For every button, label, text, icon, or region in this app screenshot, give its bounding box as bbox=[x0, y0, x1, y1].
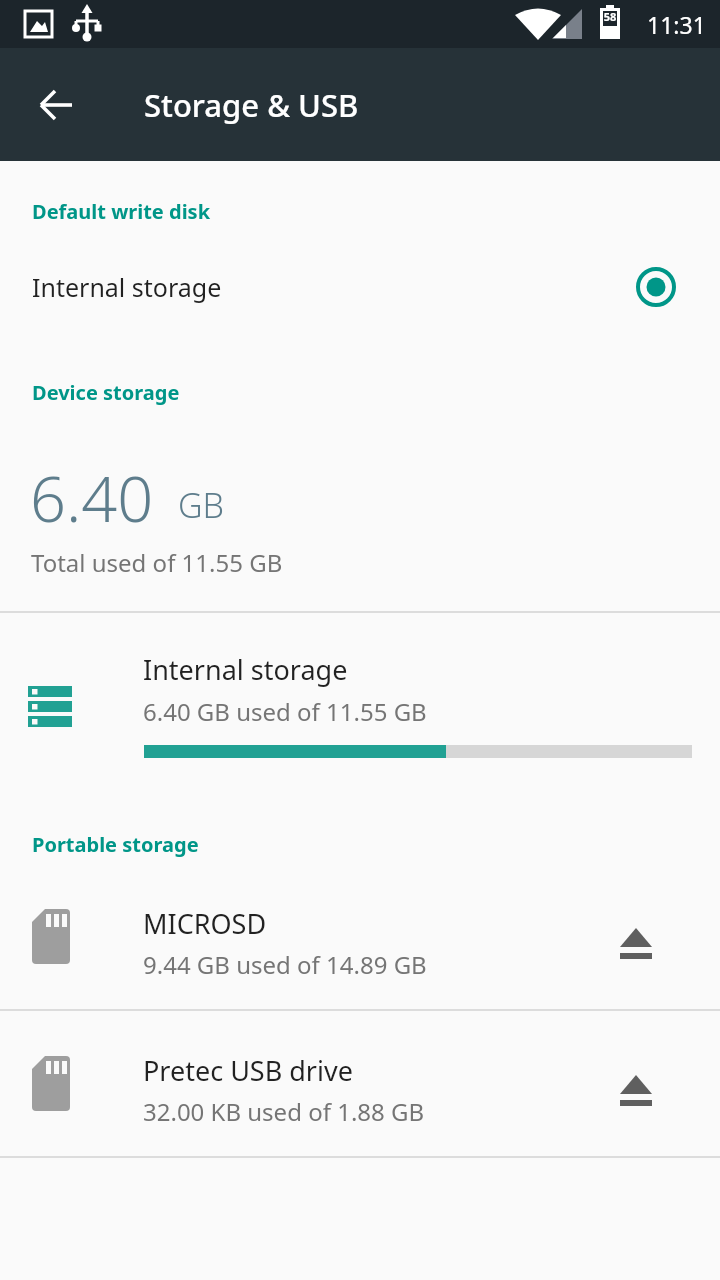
staticText: 9.44 GB used of 14.89 GB bbox=[143, 948, 427, 981]
staticText: 6.40 GB used of 11.55 GB bbox=[143, 695, 427, 728]
button[interactable]: MICROSD bbox=[0, 877, 720, 1009]
staticText: 11:31 bbox=[647, 9, 706, 40]
staticText: Default write disk bbox=[32, 198, 211, 225]
staticText: Device storage bbox=[32, 379, 180, 406]
button[interactable]: Eject bbox=[596, 903, 676, 983]
staticText: Internal storage bbox=[32, 270, 222, 304]
staticText: Pretec USB drive bbox=[143, 1052, 353, 1089]
button[interactable]: Internal storage bbox=[0, 248, 720, 326]
staticText: 6.40 bbox=[30, 455, 154, 541]
staticText: 32.00 KB used of 1.88 GB bbox=[143, 1095, 425, 1128]
button[interactable]: Eject bbox=[596, 1050, 676, 1130]
staticText: Portable storage bbox=[32, 831, 199, 858]
staticText: Total used of 11.55 GB bbox=[31, 546, 283, 579]
button[interactable]: Back bbox=[22, 71, 90, 139]
button[interactable]: Pretec USB drive bbox=[0, 1024, 720, 1156]
button[interactable]: Internal storage bbox=[0, 613, 720, 788]
staticText: MICROSD bbox=[143, 905, 267, 942]
staticText: Storage & USB bbox=[144, 84, 359, 126]
staticText: GB bbox=[178, 482, 225, 528]
staticText: 58 bbox=[601, 9, 619, 24]
staticText: Internal storage bbox=[143, 651, 348, 688]
